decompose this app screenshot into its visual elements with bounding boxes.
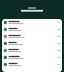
button[interactable] <box>2 26 62 33</box>
button[interactable] <box>2 61 62 68</box>
button[interactable] <box>2 40 62 47</box>
button[interactable] <box>2 47 62 54</box>
button[interactable] <box>2 54 62 61</box>
button[interactable] <box>2 19 62 26</box>
button[interactable] <box>2 33 62 40</box>
